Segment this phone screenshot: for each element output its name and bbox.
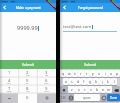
staticText: k	[107, 79, 109, 84]
button[interactable]: Back	[60, 3, 69, 12]
button[interactable]: Symbols	[0, 93, 18, 103]
staticText: u	[98, 71, 101, 76]
button[interactable]: y	[90, 70, 96, 77]
button[interactable]: g	[87, 78, 93, 85]
staticText: j	[102, 79, 103, 84]
staticText: n	[102, 87, 105, 92]
button[interactable]: z	[68, 86, 75, 93]
button[interactable]: 6	[37, 77, 56, 85]
button[interactable]: k	[105, 78, 111, 85]
staticText: g	[89, 79, 92, 84]
staticText: h	[95, 79, 98, 84]
button[interactable]: 123	[60, 94, 67, 101]
staticText: o	[110, 71, 113, 76]
staticText: Submit	[84, 62, 96, 67]
button[interactable]: j	[99, 78, 105, 85]
staticText: l	[114, 79, 115, 84]
staticText: a	[65, 79, 67, 84]
button[interactable]: s	[69, 78, 75, 85]
button[interactable]: Submit	[0, 60, 56, 69]
button[interactable]: Switch keyboard	[67, 94, 74, 101]
button[interactable]: o	[108, 70, 114, 77]
staticText: 9999.99	[17, 24, 38, 32]
staticText: 1	[8, 70, 11, 76]
staticText: q	[62, 71, 65, 76]
staticText: c	[84, 87, 86, 92]
button[interactable]: p	[114, 70, 120, 77]
button[interactable]: u	[96, 70, 102, 77]
button[interactable]: v	[88, 86, 94, 93]
staticText: Submit	[22, 62, 34, 67]
staticText: m	[107, 87, 111, 92]
staticText: y	[92, 71, 94, 76]
button[interactable]: 4	[0, 77, 18, 85]
button[interactable]: b	[94, 86, 100, 93]
staticText: d	[77, 79, 80, 84]
staticText: 6	[45, 78, 48, 84]
button[interactable]: l	[111, 78, 117, 85]
staticText: ABC	[26, 74, 30, 76]
button[interactable]: 7	[0, 85, 18, 93]
staticText: s	[71, 79, 73, 84]
button[interactable]: c	[82, 86, 88, 93]
button[interactable]: space	[74, 94, 100, 101]
staticText: DEF	[45, 74, 49, 76]
staticText: 5	[26, 78, 29, 84]
button[interactable]: x	[75, 86, 82, 93]
button[interactable]: t	[84, 70, 90, 77]
staticText: Forgot password	[78, 6, 103, 10]
staticText: GHI	[7, 82, 11, 84]
staticText: 123	[61, 96, 66, 100]
button[interactable]: Shift	[60, 86, 68, 93]
staticText: Done	[110, 96, 118, 100]
button[interactable]: 5	[18, 77, 37, 85]
button[interactable]: h	[93, 78, 99, 85]
staticText: p	[116, 71, 119, 76]
staticText: 2	[26, 70, 29, 76]
button[interactable]: m	[106, 86, 112, 93]
staticText: f	[83, 79, 85, 84]
staticText: 3	[45, 70, 48, 76]
staticText: PQRS	[7, 90, 12, 92]
staticText: t	[86, 71, 88, 76]
staticText: Make a payment	[16, 6, 41, 10]
button[interactable]: 9	[37, 85, 56, 93]
staticText: w	[68, 71, 71, 76]
staticText: TUV	[26, 90, 30, 92]
button[interactable]: e	[72, 70, 78, 77]
staticText: MNO	[44, 82, 49, 84]
button[interactable]: 2	[18, 69, 37, 77]
button[interactable]: r	[78, 70, 84, 77]
staticText: JKL	[26, 82, 29, 84]
button[interactable]: w	[66, 70, 72, 77]
button[interactable]: Emoji	[100, 94, 107, 101]
staticText: e	[74, 71, 76, 76]
staticText: 4	[8, 78, 11, 84]
button[interactable]: Submit	[60, 60, 120, 69]
staticText: b	[96, 87, 99, 92]
button[interactable]: 0	[18, 93, 37, 103]
staticText: 0	[26, 95, 29, 101]
staticText: 9	[45, 86, 48, 92]
button[interactable]: 3	[37, 69, 56, 77]
button[interactable]: 8	[18, 85, 37, 93]
staticText: test@test.com	[63, 24, 92, 30]
button[interactable]: a	[63, 78, 69, 85]
button[interactable]: i	[102, 70, 108, 77]
staticText: 7	[8, 86, 11, 92]
button[interactable]: n	[100, 86, 106, 93]
button[interactable]: f	[81, 78, 87, 85]
staticText: space	[83, 96, 91, 100]
staticText: v	[90, 87, 92, 92]
button[interactable]: Done	[107, 94, 120, 101]
button[interactable]: Back	[0, 3, 9, 12]
button[interactable]: 1	[0, 69, 18, 77]
button[interactable]: q	[60, 70, 66, 77]
staticText: 8	[26, 86, 29, 92]
button[interactable]: Backspace	[112, 86, 120, 93]
staticText: x	[78, 87, 80, 92]
staticText: r	[80, 71, 82, 76]
button[interactable]: Backspace	[37, 93, 56, 103]
button[interactable]: d	[75, 78, 81, 85]
staticText: z	[71, 87, 73, 92]
